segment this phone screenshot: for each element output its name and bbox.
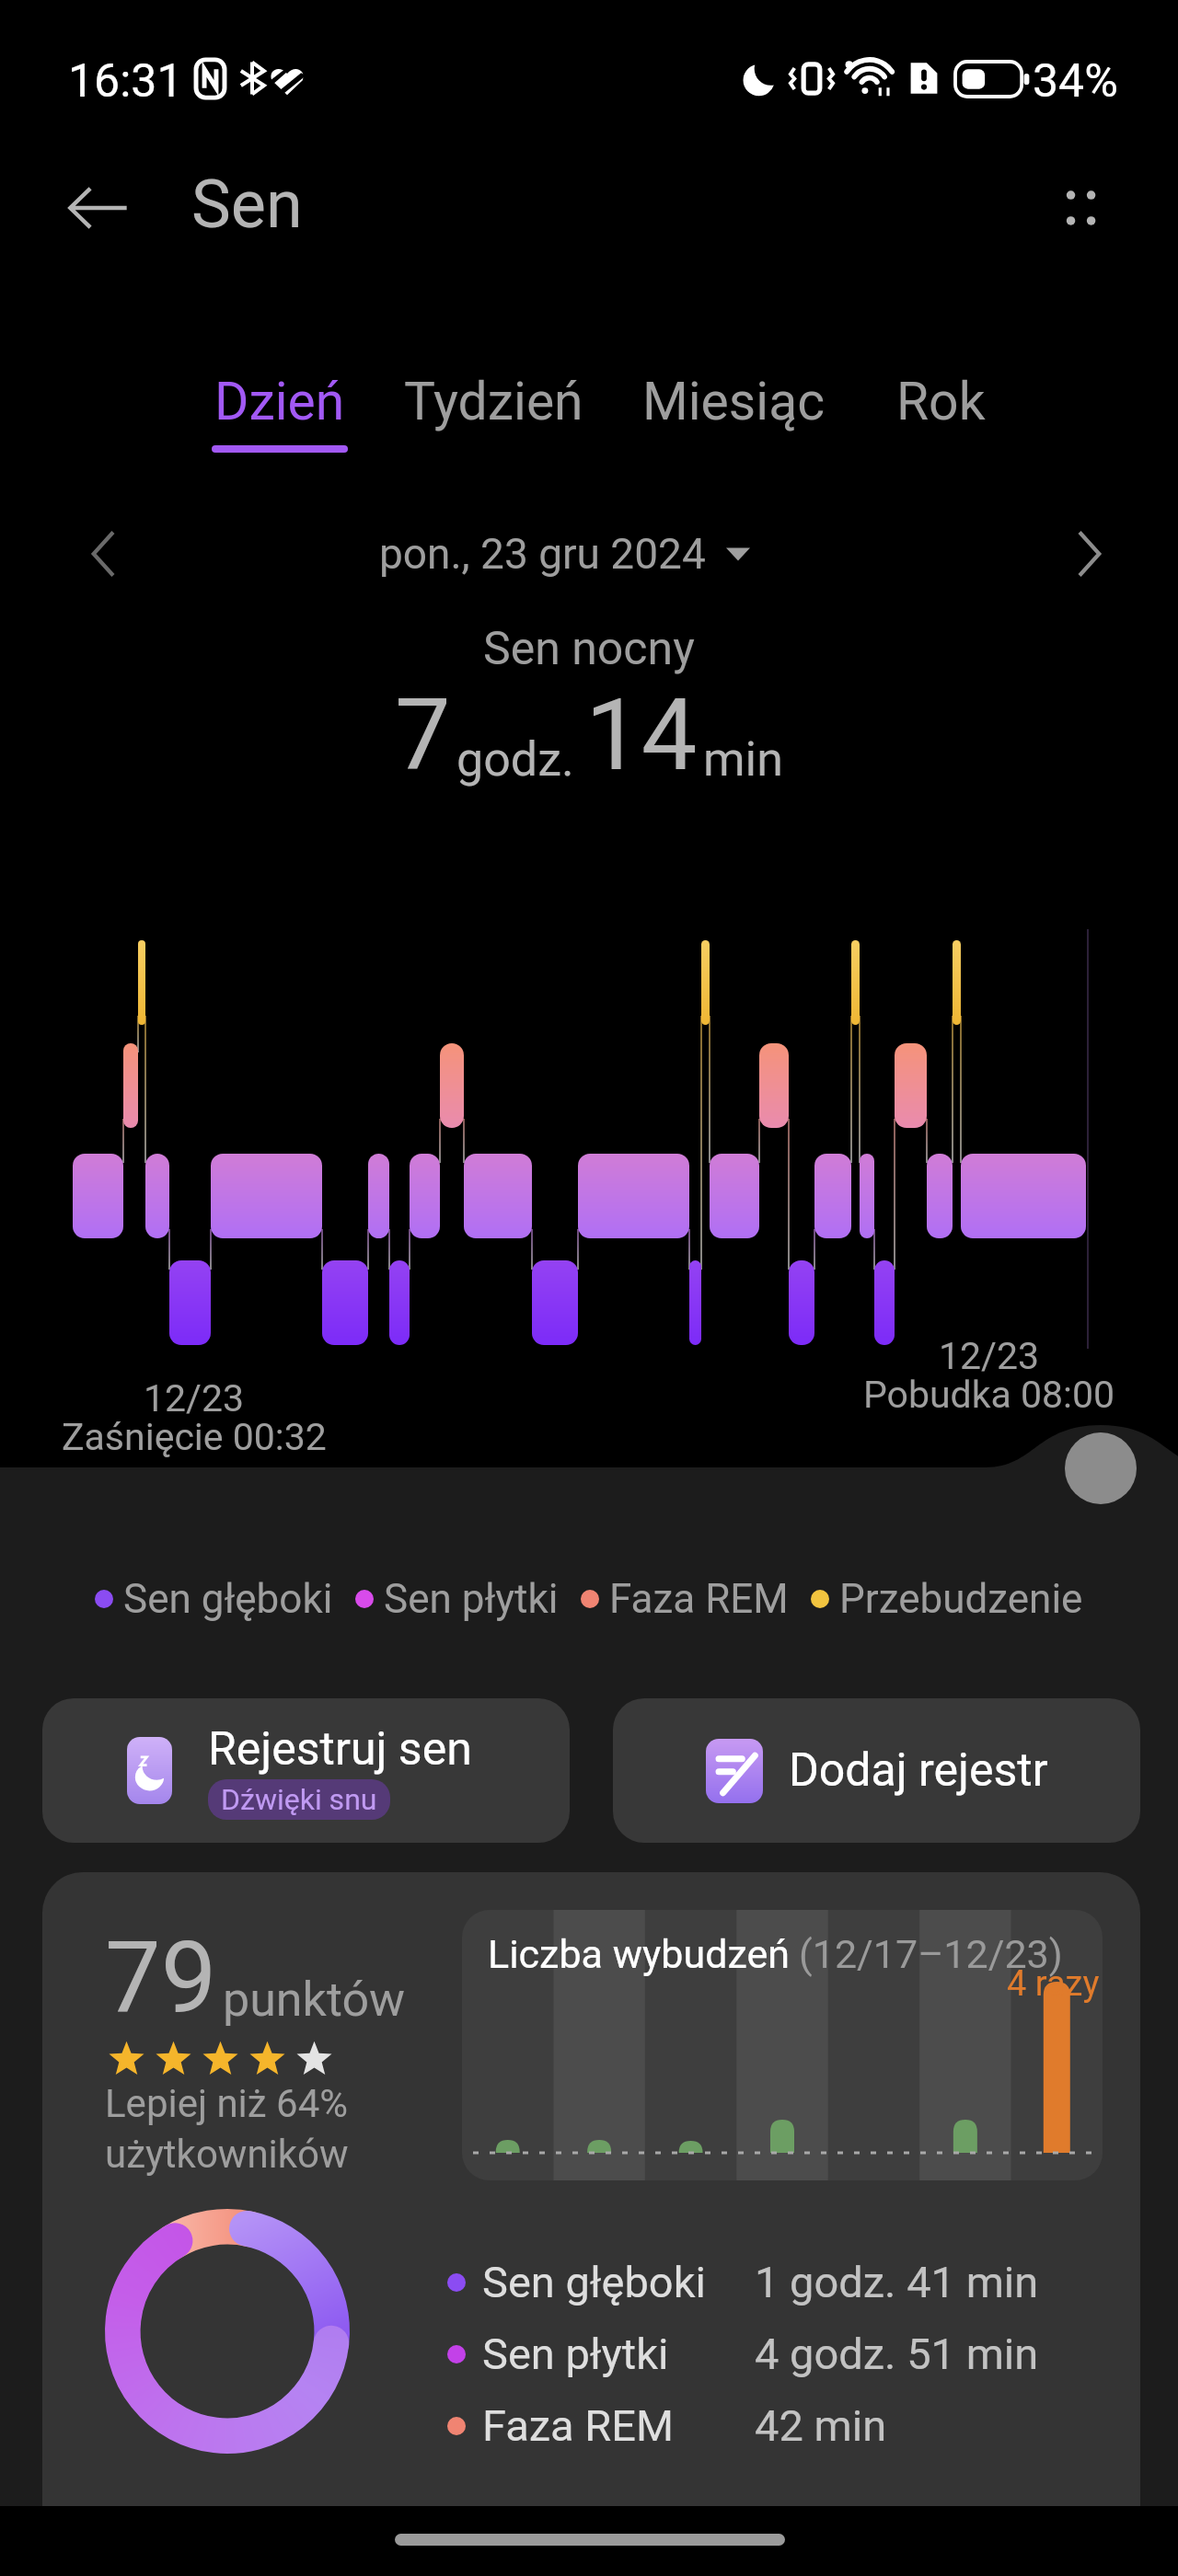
button[interactable]: pon., 23 gru 2024	[379, 519, 750, 589]
staticText: 4 razy	[1007, 1963, 1100, 2005]
staticText: punktów	[223, 1972, 406, 2028]
button[interactable]: More options	[1034, 162, 1126, 254]
staticText: Rejestruj sen	[208, 1722, 472, 1777]
staticText: Dzień	[214, 371, 345, 432]
staticText: 34%	[1033, 54, 1118, 109]
button[interactable]: Expand details	[1065, 1432, 1137, 1504]
staticText: min	[703, 731, 783, 788]
staticText: 4 godz. 51 min	[755, 2329, 1039, 2379]
staticText: Sen głęboki	[123, 1575, 333, 1623]
button[interactable]: Dodaj rejestr	[613, 1698, 1140, 1843]
staticText: pon., 23 gru 2024	[379, 529, 706, 579]
staticText: Miesiąc	[642, 371, 825, 432]
staticText: Sen nocny	[483, 622, 695, 676]
button[interactable]: Miesiąc	[623, 371, 844, 472]
button[interactable]: Previous day	[63, 512, 147, 596]
button[interactable]: Rejestruj sen	[42, 1698, 570, 1843]
staticText: Liczba wybudzeń	[488, 1931, 790, 1977]
staticText: użytkowników	[105, 2132, 349, 2177]
staticText: Rok	[896, 371, 986, 432]
staticText: Zaśnięcie 00:32	[62, 1415, 327, 1459]
staticText: Pobudka 08:00	[863, 1373, 1115, 1417]
staticText: Sen	[191, 166, 303, 243]
staticText: Dodaj rejestr	[789, 1743, 1048, 1798]
staticText: 16:31	[68, 54, 183, 109]
staticText: 7	[395, 677, 451, 794]
staticText: 1 godz. 41 min	[755, 2257, 1039, 2307]
button[interactable]: Tydzień	[383, 371, 604, 472]
staticText: Lepiej niż 64%	[105, 2081, 349, 2126]
staticText: Faza REM	[609, 1575, 789, 1623]
staticText: 12/23	[144, 1376, 245, 1420]
staticText: 14	[585, 677, 698, 794]
staticText: Sen płytki	[384, 1575, 559, 1623]
staticText: Przebudzenie	[839, 1575, 1083, 1623]
button[interactable]: Next day	[1045, 512, 1130, 596]
staticText: (12/17–12/23)	[799, 1931, 1063, 1977]
staticText: Faza REM	[482, 2400, 675, 2451]
staticText: godz.	[456, 731, 574, 788]
button[interactable]: Dzień	[169, 371, 390, 472]
button[interactable]: Rok	[830, 371, 1051, 472]
button[interactable]: Back	[52, 162, 144, 254]
staticText: Sen głęboki	[482, 2257, 706, 2307]
staticText: 42 min	[755, 2400, 887, 2451]
staticText: Sen płytki	[482, 2329, 669, 2379]
staticText: Dźwięki snu	[221, 1782, 377, 1817]
staticText: 79	[105, 1920, 217, 2037]
staticText: 12/23	[939, 1334, 1040, 1378]
staticText: Tydzień	[404, 371, 583, 432]
